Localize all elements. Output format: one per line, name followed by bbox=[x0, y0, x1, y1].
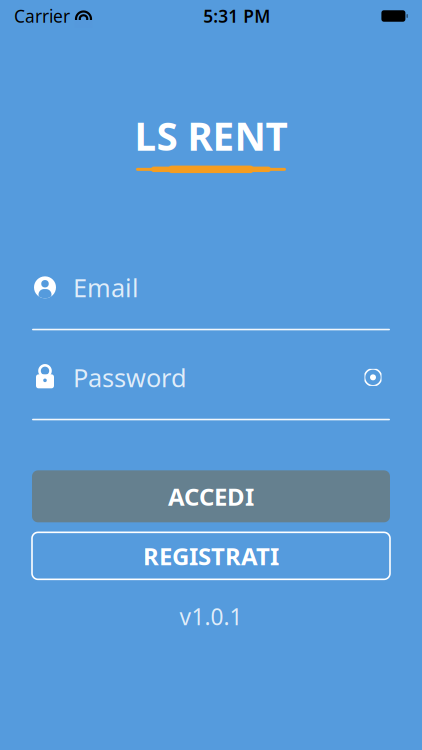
staticText: v1.0.1 bbox=[179, 601, 242, 631]
staticText: REGISTRATI bbox=[143, 540, 279, 572]
button[interactable]: ACCEDI bbox=[32, 470, 390, 522]
staticText: 5:31 PM bbox=[203, 4, 270, 27]
staticText: Password bbox=[73, 360, 187, 394]
staticText: Carrier bbox=[14, 4, 70, 27]
staticText: Email bbox=[73, 270, 139, 304]
button[interactable]: Show password bbox=[356, 361, 390, 393]
staticText: ACCEDI bbox=[168, 480, 254, 512]
button[interactable]: REGISTRATI bbox=[32, 532, 390, 579]
staticText: LS RENT bbox=[134, 110, 287, 161]
